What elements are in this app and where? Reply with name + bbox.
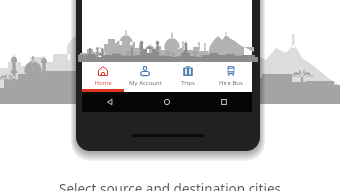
- button[interactable]: Trips: [166, 62, 209, 89]
- staticText: My Account: [129, 79, 162, 87]
- other: Back: [106, 98, 114, 106]
- staticText: Select source and destination cities: [59, 180, 282, 191]
- button[interactable]: My Account: [124, 62, 166, 89]
- staticText: Trips: [181, 79, 195, 87]
- staticText: Home: [94, 79, 112, 87]
- button[interactable]: Hire Bus: [209, 62, 252, 89]
- button[interactable]: Home: [82, 62, 124, 89]
- staticText: Hire Bus: [219, 79, 243, 87]
- other: Recents: [220, 98, 228, 106]
- other: Home: [163, 98, 171, 106]
